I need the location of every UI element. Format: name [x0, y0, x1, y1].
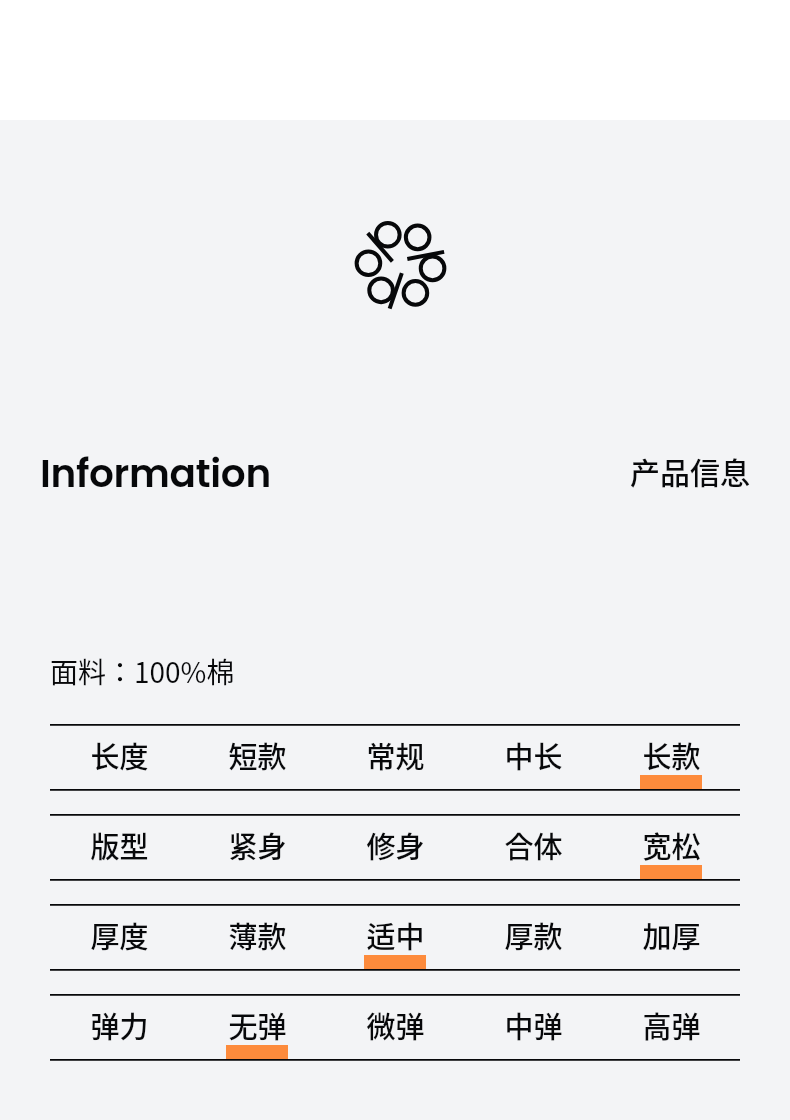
- button[interactable]: 修身: [326, 814, 464, 880]
- button[interactable]: 合体: [464, 814, 602, 880]
- button[interactable]: 薄款: [188, 904, 326, 970]
- staticText: Information: [40, 446, 271, 501]
- button[interactable]: 微弹: [326, 994, 464, 1060]
- staticText: 常规: [366, 734, 425, 776]
- staticText: 面料：100%棉: [50, 651, 235, 692]
- staticText: 弹力: [90, 1004, 149, 1046]
- button[interactable]: 中长: [464, 724, 602, 790]
- staticText: 厚度: [90, 914, 149, 956]
- button[interactable]: 常规: [326, 724, 464, 790]
- staticText: 薄款: [228, 914, 287, 956]
- staticText: 高弹: [642, 1004, 701, 1046]
- staticText: 中长: [504, 734, 563, 776]
- button[interactable]: 高弹: [602, 994, 740, 1060]
- staticText: 厚款: [504, 914, 563, 956]
- staticText: 中弹: [504, 1004, 563, 1046]
- staticText: 宽松: [642, 824, 701, 866]
- button[interactable]: 加厚: [602, 904, 740, 970]
- staticText: 修身: [366, 824, 425, 866]
- button[interactable]: 版型: [50, 814, 188, 880]
- staticText: 长度: [90, 734, 149, 776]
- staticText: 合体: [504, 824, 563, 866]
- button[interactable]: 厚款: [464, 904, 602, 970]
- button[interactable]: 无弹: [188, 994, 326, 1060]
- other: Brand logo: [351, 215, 450, 314]
- staticText: 微弹: [366, 1004, 425, 1046]
- button[interactable]: 中弹: [464, 994, 602, 1060]
- staticText: 加厚: [642, 914, 701, 956]
- staticText: 版型: [90, 824, 149, 866]
- staticText: 短款: [228, 734, 287, 776]
- staticText: 长款: [642, 734, 701, 776]
- button[interactable]: 紧身: [188, 814, 326, 880]
- staticText: 适中: [366, 914, 425, 956]
- button[interactable]: 厚度: [50, 904, 188, 970]
- staticText: 紧身: [228, 824, 287, 866]
- button[interactable]: 宽松: [602, 814, 740, 880]
- button[interactable]: 适中: [326, 904, 464, 970]
- staticText: 产品信息: [630, 449, 750, 492]
- button[interactable]: 短款: [188, 724, 326, 790]
- button[interactable]: 长款: [602, 724, 740, 790]
- button[interactable]: 弹力: [50, 994, 188, 1060]
- button[interactable]: 长度: [50, 724, 188, 790]
- staticText: 无弹: [228, 1004, 287, 1046]
